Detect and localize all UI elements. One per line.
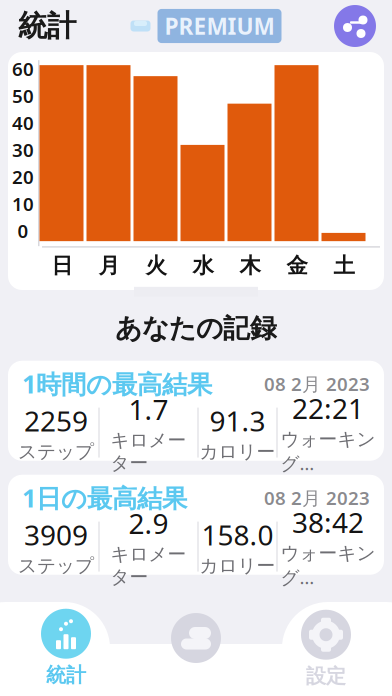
- staticText: ステップ: [18, 554, 94, 577]
- staticText: 22:21: [292, 390, 364, 427]
- staticText: 1日の最高結果: [22, 481, 187, 514]
- staticText: キロメーター: [110, 429, 186, 475]
- staticText: あなたの記録: [115, 312, 277, 345]
- button[interactable]: 1時間の最高結果: [8, 361, 384, 461]
- staticText: 設定: [306, 664, 346, 688]
- staticText: 火: [145, 253, 166, 279]
- staticText: 2259: [24, 402, 88, 439]
- staticText: 統計: [18, 8, 76, 44]
- button[interactable]: 設定: [261, 599, 391, 696]
- staticText: 08 2月 2023: [264, 485, 370, 510]
- staticText: 3909: [24, 516, 88, 553]
- staticText: 月: [98, 253, 119, 279]
- staticText: 10: [12, 191, 34, 216]
- staticText: 38:42: [292, 504, 364, 541]
- staticText: 水: [192, 253, 213, 279]
- staticText: ウォーキング…: [280, 428, 375, 475]
- staticText: 日: [51, 253, 72, 279]
- staticText: PREMIUM: [164, 11, 274, 41]
- staticText: キロメーター: [110, 543, 186, 589]
- staticText: 60: [12, 56, 34, 81]
- staticText: ステップ: [18, 440, 94, 463]
- staticText: 2.9: [128, 505, 168, 542]
- staticText: 20: [12, 164, 34, 189]
- staticText: カロリー: [199, 554, 275, 577]
- staticText: 1時間の最高結果: [22, 367, 212, 400]
- staticText: 91.3: [209, 402, 265, 439]
- staticText: 08 2月 2023: [264, 371, 370, 396]
- staticText: ウォーキング…: [280, 542, 375, 589]
- staticText: 50: [12, 83, 34, 108]
- staticText: 30: [12, 137, 34, 162]
- staticText: カロリー: [199, 440, 275, 463]
- button[interactable]: PREMIUM: [128, 9, 281, 43]
- staticText: 統計: [46, 663, 86, 687]
- button[interactable]: Share: [334, 5, 376, 47]
- staticText: 木: [239, 253, 260, 279]
- staticText: 40: [12, 110, 34, 135]
- staticText: 0: [17, 218, 28, 243]
- staticText: 金: [286, 253, 307, 279]
- button[interactable]: 統計: [1, 600, 131, 696]
- staticText: 1.7: [128, 391, 168, 428]
- button[interactable]: 1日の最高結果: [8, 475, 384, 575]
- button[interactable]: 歩数: [131, 599, 261, 696]
- staticText: 土: [333, 253, 354, 279]
- staticText: 158.0: [201, 516, 273, 553]
